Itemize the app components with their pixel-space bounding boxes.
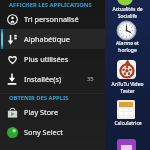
button[interactable]: Alphabétique xyxy=(0,29,105,49)
staticText: OBTENIR DES APPLIS xyxy=(9,94,69,102)
button[interactable]: Sony Select xyxy=(0,122,105,142)
staticText: Play Store xyxy=(24,107,59,117)
staticText: Alphabétique xyxy=(24,34,70,44)
staticText: Installée(s) xyxy=(24,74,62,84)
button[interactable]: Plus utilisées xyxy=(0,49,105,69)
button[interactable]: Tri personnalisé xyxy=(0,9,105,29)
staticText: Sony Select xyxy=(24,127,63,137)
staticText: Calculatrice xyxy=(114,120,142,127)
staticText: AFFICHER LES APPLICATIONS xyxy=(9,1,92,9)
staticText: Plus utilisées xyxy=(24,54,69,64)
staticText: Actualités de Socialife xyxy=(112,6,143,19)
button[interactable]: Play Store xyxy=(0,102,105,122)
staticText: AnTuTu Video Tester xyxy=(111,81,144,94)
button[interactable]: Installée(s) xyxy=(0,69,105,89)
staticText: Alarme et horloge xyxy=(116,40,139,53)
staticText: 35 xyxy=(87,75,94,83)
staticText: Tri personnalisé xyxy=(24,14,79,24)
